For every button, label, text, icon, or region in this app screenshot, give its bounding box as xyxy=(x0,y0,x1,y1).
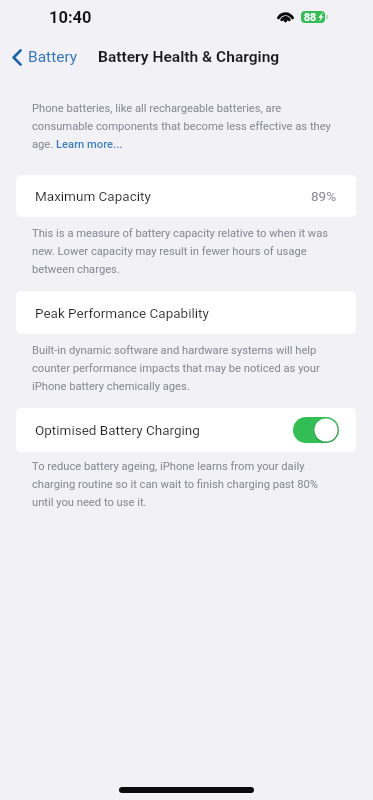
staticText: Peak Performance Capability xyxy=(35,305,209,321)
staticText: Optimised Battery Charging xyxy=(35,422,200,438)
button[interactable]: Maximum Capacity xyxy=(16,175,356,217)
staticText: 88 xyxy=(304,11,317,23)
staticText: This is a measure of battery capacity re… xyxy=(32,227,338,276)
staticText: Maximum Capacity xyxy=(35,188,151,204)
staticText: To reduce battery ageing, iPhone learns … xyxy=(32,460,338,509)
button[interactable]: Optimised Battery Charging xyxy=(16,408,356,452)
button[interactable]: Battery xyxy=(8,44,82,70)
button[interactable]: Peak Performance Capability xyxy=(16,291,356,334)
staticText: Built-in dynamic software and hardware s… xyxy=(32,344,338,393)
staticText: 89% xyxy=(311,188,337,204)
staticText: Battery Health & Charging xyxy=(98,48,280,66)
staticText: 10:40 xyxy=(49,8,92,27)
staticText: Phone batteries, like all rechargeable b… xyxy=(32,102,338,151)
button[interactable]: Optimised Battery Charging toggle xyxy=(293,417,339,443)
staticText: Battery xyxy=(28,48,78,66)
